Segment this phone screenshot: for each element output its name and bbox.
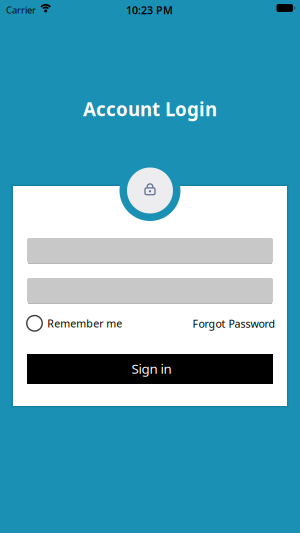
staticText: Remember me (47, 316, 122, 330)
button[interactable]: Remember me (27, 316, 122, 331)
staticText: Forgot Password (192, 316, 275, 331)
staticText: Account Login (83, 97, 217, 121)
staticText: Sign in (131, 360, 171, 377)
button[interactable]: Forgot Password (192, 316, 275, 331)
button[interactable]: Sign in (27, 354, 273, 384)
staticText: 10:23 PM (126, 3, 173, 17)
staticText: Carrier (6, 4, 36, 16)
